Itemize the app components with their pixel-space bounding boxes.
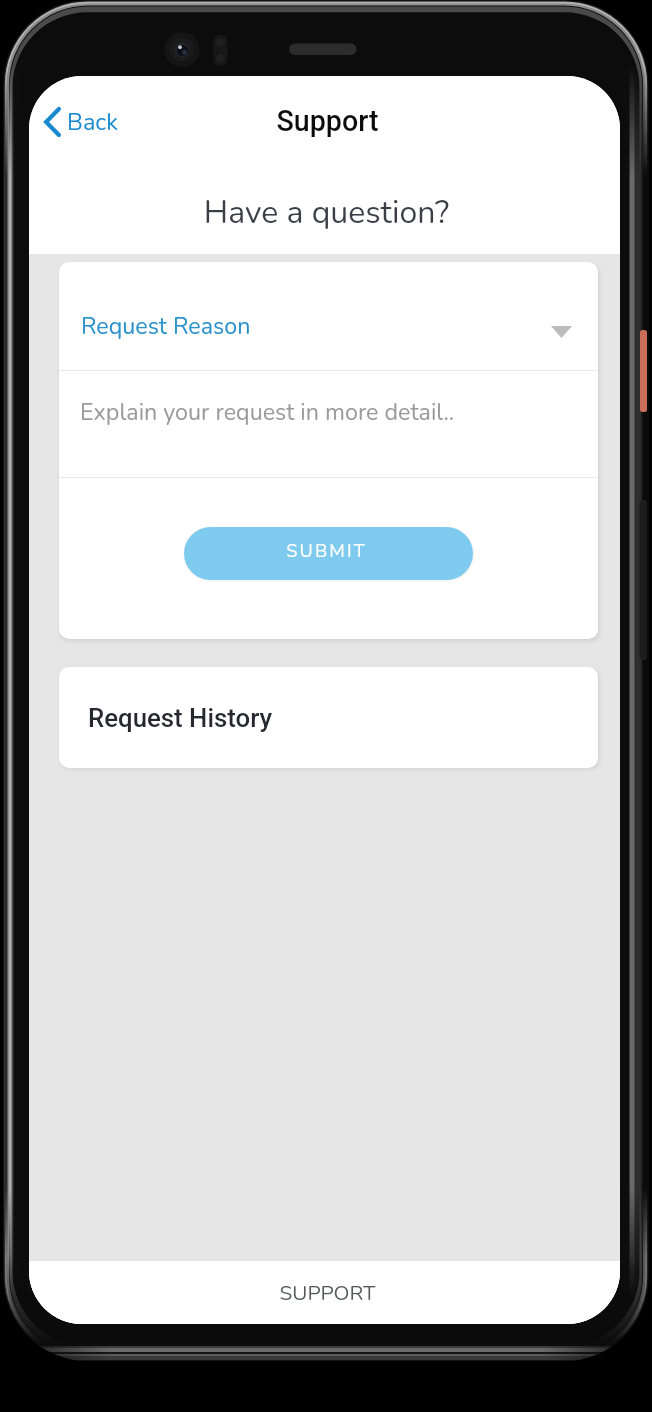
staticText: Back	[67, 106, 118, 138]
button[interactable]: SUPPORT	[29, 1261, 620, 1324]
button[interactable]	[59, 262, 598, 370]
button[interactable]: Request History	[59, 667, 598, 768]
staticText: Request History	[88, 703, 273, 733]
button[interactable]: Back	[35, 98, 127, 146]
staticText: Explain your request in more detail..	[80, 396, 455, 428]
button[interactable]	[59, 372, 598, 477]
staticText: Have a question?	[31, 191, 620, 235]
staticText: SUPPORT	[32, 1279, 620, 1307]
staticText: Support	[32, 104, 620, 138]
staticText: Request Reason	[81, 310, 251, 342]
button[interactable]: SUBMIT	[184, 527, 473, 580]
staticText: SUBMIT	[184, 539, 471, 564]
